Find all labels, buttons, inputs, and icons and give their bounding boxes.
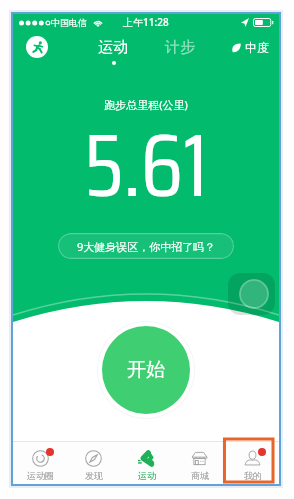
staticText: 商城 bbox=[191, 470, 209, 481]
staticText: 5.61 bbox=[13, 95, 279, 235]
button[interactable]: 运动 bbox=[90, 34, 136, 61]
button[interactable]: 计步 bbox=[157, 34, 203, 61]
staticText: 9大健身误区，你中招了吗？ bbox=[77, 239, 216, 254]
staticText: 中度 bbox=[245, 40, 269, 55]
button[interactable]: 开始 bbox=[102, 326, 190, 414]
staticText: 发现 bbox=[85, 470, 103, 481]
staticText: 运动 bbox=[138, 470, 156, 481]
staticText: 计步 bbox=[165, 38, 195, 57]
staticText: 跑步总里程(公里) bbox=[13, 97, 279, 112]
staticText: 运动 bbox=[98, 38, 128, 57]
button[interactable]: Profile bbox=[26, 36, 48, 58]
button[interactable]: 9大健身误区，你中招了吗？ bbox=[58, 233, 234, 259]
button[interactable]: 商城 bbox=[173, 441, 226, 484]
button[interactable]: 我的 bbox=[226, 441, 279, 484]
staticText: 开始 bbox=[127, 358, 165, 382]
staticText: 运动圈 bbox=[27, 470, 54, 481]
button[interactable]: 运动圈 bbox=[13, 441, 67, 484]
button[interactable]: 中度 bbox=[231, 40, 269, 55]
button[interactable]: 运动 bbox=[120, 441, 173, 484]
button[interactable]: 发现 bbox=[67, 441, 120, 484]
button[interactable]: Assistive touch bbox=[228, 273, 275, 315]
staticText: 我的 bbox=[244, 470, 262, 481]
staticText: 上午11:28 bbox=[123, 15, 169, 29]
staticText: 中国电信 bbox=[51, 17, 87, 28]
